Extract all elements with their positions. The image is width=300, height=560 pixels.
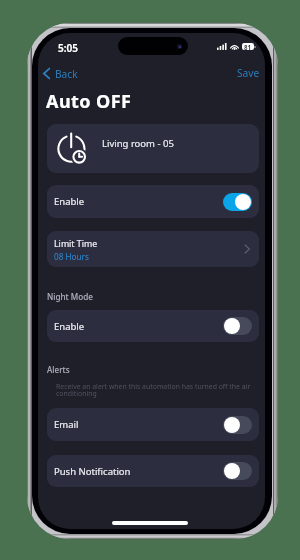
button[interactable]: Back — [43, 66, 78, 81]
staticText: Receive an alert when this automation ha… — [56, 382, 261, 398]
staticText: Limit Time — [54, 238, 98, 250]
button[interactable]: Push Notification — [47, 455, 259, 487]
staticText: Save — [237, 66, 260, 80]
staticText: 81 — [244, 43, 252, 50]
staticText: Enable — [54, 195, 85, 208]
staticText: 5:05 — [58, 41, 78, 55]
button[interactable]: Save — [237, 66, 260, 80]
other: Cellular signal — [217, 43, 225, 50]
staticText: Alerts — [47, 364, 70, 375]
staticText: 08 Hours — [54, 251, 89, 262]
button[interactable]: Email — [47, 408, 259, 441]
button[interactable]: Auto off timer — [47, 124, 259, 173]
staticText: Email — [54, 418, 79, 431]
staticText: Enable — [54, 320, 85, 333]
staticText: Living room - 05 — [102, 137, 174, 150]
button[interactable]: Limit Time — [47, 231, 259, 267]
button[interactable]: Enable — [47, 185, 259, 218]
staticText: Push Notification — [54, 465, 131, 478]
staticText: Auto OFF — [46, 89, 132, 114]
other: Wi-Fi — [230, 43, 239, 50]
other: Battery 81 percent — [242, 43, 254, 50]
button[interactable]: Enable — [47, 310, 259, 342]
other: Auto off timer — [57, 131, 88, 167]
staticText: Back — [55, 67, 78, 81]
staticText: Night Mode — [47, 291, 93, 302]
